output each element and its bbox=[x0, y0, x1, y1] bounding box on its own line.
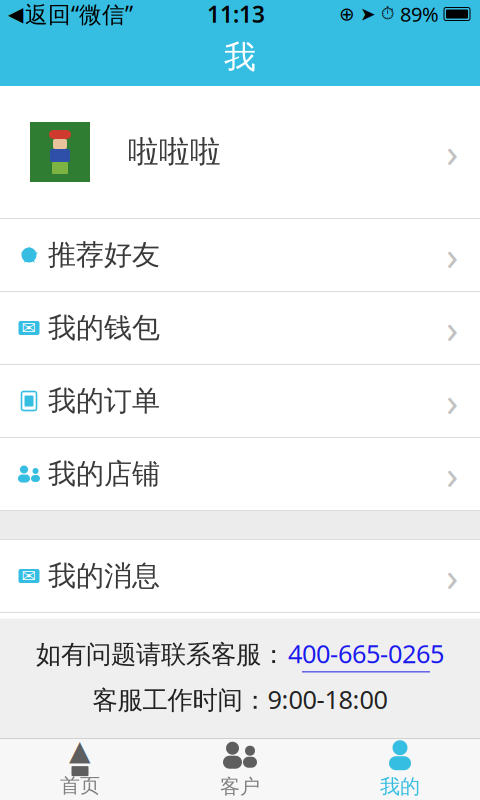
staticText: 返回“微信” bbox=[25, 0, 133, 29]
staticText: 啦啦啦 bbox=[128, 133, 221, 171]
button[interactable]: ✉ bbox=[0, 613, 480, 685]
staticText: 我的设置 bbox=[48, 632, 160, 666]
staticText: 我的消息 bbox=[48, 559, 160, 593]
staticText: 11:13 bbox=[207, 0, 265, 29]
staticText: ◀ bbox=[8, 3, 23, 25]
staticText: 我的钱包 bbox=[48, 311, 160, 345]
button[interactable]: ▲ bbox=[0, 739, 160, 800]
staticText: 400-665-0265 bbox=[288, 637, 444, 670]
staticText: ⏱ bbox=[381, 5, 395, 22]
staticText: › bbox=[446, 374, 458, 427]
button[interactable]: 我的 bbox=[320, 739, 480, 800]
staticText: › bbox=[446, 125, 458, 178]
button[interactable]: 客户 bbox=[160, 739, 320, 800]
staticText: 客户 bbox=[220, 774, 260, 799]
staticText: › bbox=[446, 301, 458, 354]
staticText: 如有问题请联系客服： bbox=[36, 639, 286, 670]
staticText: ✉ bbox=[21, 566, 36, 586]
staticText: 首页 bbox=[60, 773, 100, 798]
staticText: 我的 bbox=[380, 774, 420, 799]
button[interactable]: ★ bbox=[0, 219, 480, 291]
staticText: ▲ bbox=[69, 734, 91, 766]
staticText: ★ bbox=[19, 242, 39, 268]
staticText: 推荐好友 bbox=[48, 238, 160, 272]
button[interactable]: ◀ bbox=[0, 0, 133, 29]
staticText: ✉ bbox=[21, 318, 36, 338]
button[interactable]: 我的店铺 bbox=[0, 438, 480, 510]
staticText: 客服工作时间：9:00-18:00 bbox=[92, 682, 387, 716]
staticText: ⊕ bbox=[339, 3, 355, 25]
staticText: 我 bbox=[224, 37, 256, 77]
staticText: 我的订单 bbox=[48, 384, 160, 418]
staticText: 我的店铺 bbox=[48, 457, 160, 491]
staticText: 89% bbox=[400, 1, 439, 27]
staticText: › bbox=[446, 228, 458, 281]
button[interactable]: 啦啦啦 bbox=[0, 86, 480, 218]
button[interactable]: ✉ bbox=[0, 540, 480, 612]
staticText: ➤ bbox=[360, 3, 376, 25]
staticText: › bbox=[446, 447, 458, 500]
button[interactable]: 400-665-0265 bbox=[288, 637, 444, 672]
button[interactable]: 我的订单 bbox=[0, 365, 480, 437]
button[interactable]: ✉ bbox=[0, 292, 480, 364]
staticText: › bbox=[446, 549, 458, 602]
